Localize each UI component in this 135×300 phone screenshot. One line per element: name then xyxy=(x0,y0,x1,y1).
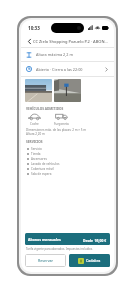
button[interactable]: Tienda xyxy=(27,151,114,156)
button[interactable]: Abierto · Cierra a las 22:00 xyxy=(21,62,114,76)
button[interactable]: Ascensores xyxy=(27,156,114,161)
staticText: Coche xyxy=(30,122,39,126)
staticText: Abonos mensuales xyxy=(28,237,61,242)
button[interactable]: Cobertura móvil xyxy=(27,166,114,171)
button[interactable]: Reservar xyxy=(25,254,66,267)
staticText: Dimensiones máx. de las plazas: 2 m × 5 … xyxy=(26,128,87,132)
button[interactable]: Back xyxy=(25,37,33,45)
button[interactable]: Back xyxy=(21,35,114,47)
button[interactable]: Abonos mensuales xyxy=(25,233,110,245)
staticText: Cadabra xyxy=(86,258,101,263)
staticText: VEHÍCULOS ADMITIDOS xyxy=(26,107,64,111)
staticText: Abierto · Cierra a las 22:00 xyxy=(36,67,83,72)
button[interactable]: Sala de espera xyxy=(27,171,114,176)
button[interactable]: Parking photo 1 xyxy=(25,79,52,102)
staticText: Altura 2,20 m xyxy=(26,132,45,136)
button[interactable]: Parking photo 2 xyxy=(54,79,81,102)
staticText: Tienda xyxy=(31,152,41,156)
staticText: SERVICIOS xyxy=(26,140,43,144)
button[interactable]: Coche xyxy=(28,113,41,126)
staticText: Tarifa vigente para abonados. Impuestos … xyxy=(26,247,93,251)
staticText: CC Zielo Shopping Pozuelo P.2 · ABONADOS xyxy=(33,39,110,44)
button[interactable]: Lavado de vehículos xyxy=(27,161,114,166)
button[interactable]: Furgoneta xyxy=(54,113,69,126)
staticText: Lavado de vehículos xyxy=(31,162,60,166)
button[interactable]: Cadabra xyxy=(69,254,110,267)
staticText: Servicio xyxy=(31,147,42,151)
staticText: Ascensores xyxy=(31,157,47,161)
staticText: 10:33 xyxy=(28,25,40,31)
staticText: Sala de espera xyxy=(31,172,52,176)
staticText: Desde 95,00 € xyxy=(83,238,107,242)
staticText: Cobertura móvil xyxy=(31,167,54,171)
staticText: Reservar xyxy=(38,258,54,263)
button[interactable]: Altura máxima 2,2 m xyxy=(21,48,114,61)
staticText: Furgoneta xyxy=(54,122,69,126)
button[interactable]: Servicio xyxy=(27,146,114,151)
staticText: Altura máxima 2,2 m xyxy=(36,52,73,57)
